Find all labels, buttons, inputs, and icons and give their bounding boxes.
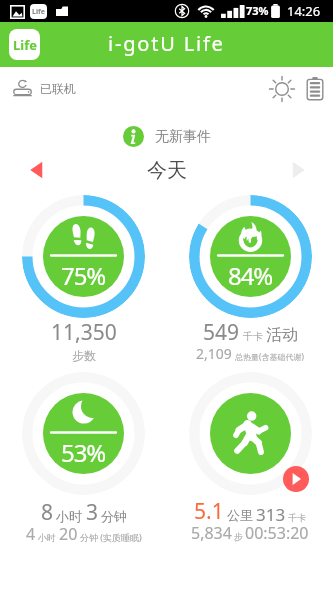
staticText: i-gotU Life bbox=[108, 30, 225, 57]
button[interactable]: Life logo bbox=[9, 29, 40, 60]
staticText: 千卡 bbox=[288, 512, 306, 523]
staticText: 00:53:20 bbox=[245, 522, 309, 544]
button[interactable]: Start activity bbox=[283, 466, 309, 492]
staticText: 总热量(含基础代谢) bbox=[235, 351, 304, 362]
staticText: 步 bbox=[234, 531, 243, 542]
button[interactable]: 5.1 bbox=[167, 497, 333, 548]
button[interactable]: Activity bbox=[189, 372, 312, 495]
staticText: 14:26 bbox=[287, 2, 321, 20]
button[interactable]: Brightness bbox=[267, 74, 297, 104]
staticText: 活动 bbox=[266, 325, 298, 345]
staticText: 75% bbox=[61, 259, 106, 292]
staticText: 4 bbox=[26, 523, 36, 545]
staticText: 无新事件 bbox=[155, 128, 211, 146]
button[interactable]: Battery bbox=[300, 74, 330, 104]
staticText: 53% bbox=[61, 436, 106, 469]
staticText: 小时 bbox=[56, 508, 82, 524]
button[interactable]: Previous day bbox=[24, 158, 48, 182]
staticText: 分钟 (实质睡眠) bbox=[80, 531, 142, 543]
staticText: 公里 bbox=[227, 507, 253, 523]
staticText: 313 bbox=[256, 503, 286, 526]
button[interactable]: 已联机 bbox=[13, 79, 76, 98]
staticText: 5,834 bbox=[191, 522, 232, 544]
staticText: 549 bbox=[203, 318, 240, 347]
button[interactable]: 11,350 bbox=[0, 318, 167, 363]
staticText: 分钟 bbox=[101, 508, 127, 524]
button[interactable]: 549 bbox=[167, 318, 333, 366]
staticText: 5.1 bbox=[194, 497, 224, 526]
staticText: 84% bbox=[228, 259, 273, 292]
staticText: 步数 bbox=[72, 348, 96, 363]
staticText: 11,350 bbox=[51, 318, 117, 347]
staticText: 今天 bbox=[147, 158, 187, 182]
staticText: Life bbox=[32, 7, 45, 17]
staticText: 8 bbox=[41, 498, 54, 527]
staticText: 73% bbox=[246, 3, 269, 18]
button[interactable]: Next day bbox=[287, 158, 311, 182]
staticText: 3 bbox=[86, 498, 99, 527]
staticText: Life bbox=[13, 36, 37, 54]
staticText: 已联机 bbox=[40, 81, 76, 96]
button[interactable]: Calories bbox=[189, 195, 312, 318]
button[interactable]: Sleep bbox=[22, 372, 145, 495]
staticText: 小时 bbox=[38, 532, 56, 543]
button[interactable]: 8 bbox=[0, 498, 167, 549]
button[interactable]: Steps bbox=[22, 195, 145, 318]
staticText: 20 bbox=[59, 523, 78, 545]
button[interactable]: 无新事件 bbox=[123, 126, 211, 147]
staticText: 千卡 bbox=[243, 330, 263, 343]
staticText: 2,109 bbox=[196, 344, 232, 363]
